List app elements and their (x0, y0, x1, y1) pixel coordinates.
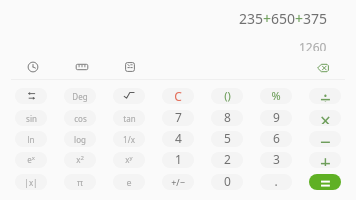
button[interactable]: 1 (162, 152, 194, 168)
button[interactable]: π (64, 174, 96, 190)
staticText: x2 (76, 154, 84, 166)
button[interactable]: Square root (113, 88, 145, 104)
staticText: xy (125, 154, 133, 166)
button[interactable]: 5 (211, 131, 243, 147)
button[interactable]: ÷ (309, 88, 341, 104)
button[interactable]: History (23, 57, 43, 77)
staticText: ln (27, 134, 35, 145)
staticText: cos (74, 113, 87, 124)
staticText: % (271, 88, 281, 103)
staticText: ex (27, 154, 35, 166)
staticText: +/− (171, 176, 185, 188)
button[interactable]: ex (15, 152, 47, 168)
staticText: π (77, 176, 83, 188)
staticText: 7 (175, 110, 182, 125)
button[interactable]: 9 (260, 110, 292, 126)
button[interactable]: 2 (211, 152, 243, 168)
button[interactable]: ln (15, 131, 47, 147)
staticText: 3 (273, 152, 280, 167)
staticText: () (224, 88, 231, 103)
button[interactable]: 1/x (113, 131, 145, 147)
staticText: 8 (224, 110, 231, 125)
button[interactable]: xy (113, 152, 145, 168)
button[interactable]: Unit converter (72, 57, 92, 77)
button[interactable]: Deg (64, 88, 96, 104)
button[interactable]: +/− (162, 174, 194, 190)
staticText: 235+650+375 (239, 9, 328, 25)
staticText: tan (123, 113, 136, 124)
staticText: − (320, 131, 331, 145)
button[interactable]: 4 (162, 131, 194, 147)
staticText: . (274, 174, 278, 189)
staticText: + (320, 152, 331, 166)
staticText: × (320, 110, 331, 124)
button[interactable]: x2 (64, 152, 96, 168)
button[interactable]: 6 (260, 131, 292, 147)
staticText: 2 (224, 152, 231, 167)
button[interactable]: cos (64, 110, 96, 126)
button[interactable]: 7 (162, 110, 194, 126)
staticText: Deg (72, 91, 88, 102)
staticText: log (74, 134, 86, 145)
button[interactable]: log (64, 131, 96, 147)
staticText: sin (26, 113, 37, 124)
button[interactable]: tan (113, 110, 145, 126)
button[interactable]: () (211, 88, 243, 104)
button[interactable]: 8 (211, 110, 243, 126)
staticText: 5 (224, 131, 231, 146)
button[interactable]: 0 (211, 174, 243, 190)
button[interactable]: |x| (15, 174, 47, 190)
staticText: 1 (175, 152, 182, 167)
button[interactable]: Calculator (120, 57, 140, 77)
button[interactable]: + (309, 152, 341, 168)
button[interactable]: e (113, 174, 145, 190)
staticText: 9 (273, 110, 280, 125)
button[interactable]: 3 (260, 152, 292, 168)
staticText: = (320, 174, 331, 187)
button[interactable]: Swap (15, 88, 47, 104)
staticText: 4 (175, 131, 182, 146)
button[interactable]: = (309, 174, 341, 190)
staticText: 0 (224, 174, 231, 189)
button[interactable]: C (162, 88, 194, 104)
button[interactable]: × (309, 110, 341, 126)
staticText: |x| (24, 177, 38, 188)
button[interactable]: . (260, 174, 292, 190)
button[interactable]: sin (15, 110, 47, 126)
staticText: C (174, 88, 182, 104)
button[interactable]: % (260, 88, 292, 104)
button[interactable]: Backspace (313, 58, 333, 78)
staticText: ÷ (320, 88, 331, 102)
staticText: 1260 (299, 39, 327, 51)
staticText: 6 (273, 131, 280, 146)
staticText: 1/x (123, 134, 135, 145)
button[interactable]: − (309, 131, 341, 147)
staticText: e (126, 176, 132, 188)
